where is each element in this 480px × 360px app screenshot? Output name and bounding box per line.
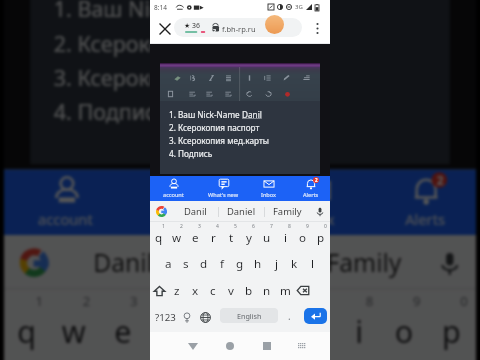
button[interactable]: Close tab [156,20,173,37]
button[interactable]: 9 [382,290,429,360]
button[interactable]: Emoji [178,304,196,331]
button[interactable]: Editor tool [301,73,311,82]
staticText: . [288,309,291,323]
button[interactable]: account [7,169,122,235]
button[interactable]: k [285,250,303,277]
button[interactable]: h [249,250,267,277]
button[interactable]: ★ 36 [174,18,302,37]
button[interactable]: 9 [294,222,312,250]
button[interactable]: Editor tool [263,89,273,98]
button[interactable]: Voice input [423,235,476,290]
button[interactable]: 1 [4,290,51,360]
button[interactable]: Google [150,201,173,222]
button[interactable]: Daniel [219,201,264,222]
button[interactable]: x [186,277,204,304]
staticText: f.bh-rp.ru [222,24,256,34]
button[interactable]: 0 [312,222,330,250]
staticText: 9 [306,223,309,230]
staticText: t [229,230,234,246]
button[interactable]: j [267,250,285,277]
button[interactable]: Editor tool [281,73,291,82]
button[interactable]: 8 [334,290,382,360]
button[interactable]: Editor tool [262,73,272,82]
button[interactable]: Back [174,332,211,360]
button[interactable]: Voice input [310,201,330,222]
button[interactable]: Editor tool [206,73,216,82]
staticText: Family [273,205,302,218]
button[interactable]: 3 [186,222,204,250]
button[interactable]: Family [265,201,310,222]
button[interactable]: Editor tool [223,89,233,98]
button[interactable]: 6 [240,290,287,360]
button[interactable]: m [276,277,294,304]
button[interactable]: g [231,250,249,277]
button[interactable]: Daniel [185,235,303,290]
staticText: ?123 [155,311,176,324]
button[interactable]: ?123 [152,304,179,331]
button[interactable]: z [168,277,186,304]
button[interactable]: 2 [368,169,480,235]
staticText: 0 [460,293,468,311]
button[interactable]: f [213,250,231,277]
staticText: t [211,311,224,353]
button[interactable]: More options [308,19,326,37]
button[interactable]: 7 [287,290,334,360]
staticText: k [291,256,298,272]
button[interactable]: n [258,277,276,304]
button[interactable]: s [177,250,195,277]
button[interactable]: Editor tool [172,73,182,82]
staticText: 9 [413,293,421,311]
button[interactable]: Google [4,235,64,290]
button[interactable]: Change language [196,304,214,331]
button[interactable]: Danil [173,201,218,222]
button[interactable]: b [240,277,258,304]
button[interactable]: 8 [276,222,294,250]
button[interactable]: 6 [240,222,258,250]
button[interactable]: Editor tool [204,89,214,98]
button[interactable]: Shift [150,277,168,304]
button[interactable]: Profile [265,15,284,34]
button[interactable]: Backspace [294,277,312,304]
staticText: x [192,283,199,299]
button[interactable]: 4 [146,290,193,360]
button[interactable]: 4 [204,222,222,250]
button[interactable]: 2 [51,290,98,360]
staticText: 4 [216,223,219,230]
button[interactable]: What's new [201,176,245,201]
button[interactable]: Editor tool [165,89,175,98]
button[interactable]: account [151,176,195,201]
button[interactable]: Switch keyboard [285,332,318,360]
button[interactable]: Editor tool [244,73,254,82]
button[interactable]: 5 [193,290,240,360]
button[interactable]: Editor tool [244,89,254,98]
button[interactable]: 0 [429,290,476,360]
button[interactable]: c [204,277,222,304]
button[interactable]: Home [211,332,248,360]
button[interactable]: Recent apps [248,332,285,360]
button[interactable]: English [220,308,278,323]
staticText: 2. Ксерокопия паспорт [54,28,292,57]
button[interactable]: Family [305,235,423,290]
button[interactable]: Editor tool [282,89,292,98]
button[interactable]: 3 [98,290,146,360]
button[interactable]: l [303,250,321,277]
button[interactable]: Editor tool [187,73,197,82]
button[interactable]: Editor tool [223,73,233,82]
button[interactable]: Inbox [258,169,374,235]
button[interactable]: 5 [222,222,240,250]
button[interactable]: . [282,304,296,331]
button[interactable]: Inbox [247,176,291,201]
button[interactable]: What's new [138,169,253,235]
button[interactable]: 2 [168,222,186,250]
button[interactable]: d [195,250,213,277]
button[interactable]: 2 [289,176,333,201]
button[interactable]: v [222,277,240,304]
button[interactable]: 7 [258,222,276,250]
button[interactable]: Enter [304,308,327,324]
staticText: 7 [270,223,273,230]
button[interactable]: Editor tool [187,89,197,98]
staticText: o [299,230,307,246]
button[interactable]: 1 [150,222,168,250]
button[interactable]: Danil [64,235,182,290]
button[interactable]: a [159,250,177,277]
